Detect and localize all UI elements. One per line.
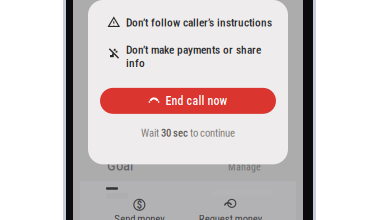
- staticText: End call now: [166, 94, 228, 108]
- staticText: Manage: [228, 161, 261, 173]
- staticText: Don’t follow caller’s instructions: [126, 16, 272, 29]
- staticText: Wait: [141, 127, 161, 139]
- staticText: Don’t make payments or share info: [126, 43, 261, 70]
- staticText: 30 sec: [161, 127, 188, 139]
- staticText: Goal: [107, 157, 133, 174]
- staticText: $: [137, 198, 142, 211]
- staticText: Request money: [199, 213, 262, 220]
- staticText: to continue: [188, 127, 235, 139]
- staticText: Send money: [114, 213, 164, 220]
- button[interactable]: End call now: [88, 88, 288, 114]
